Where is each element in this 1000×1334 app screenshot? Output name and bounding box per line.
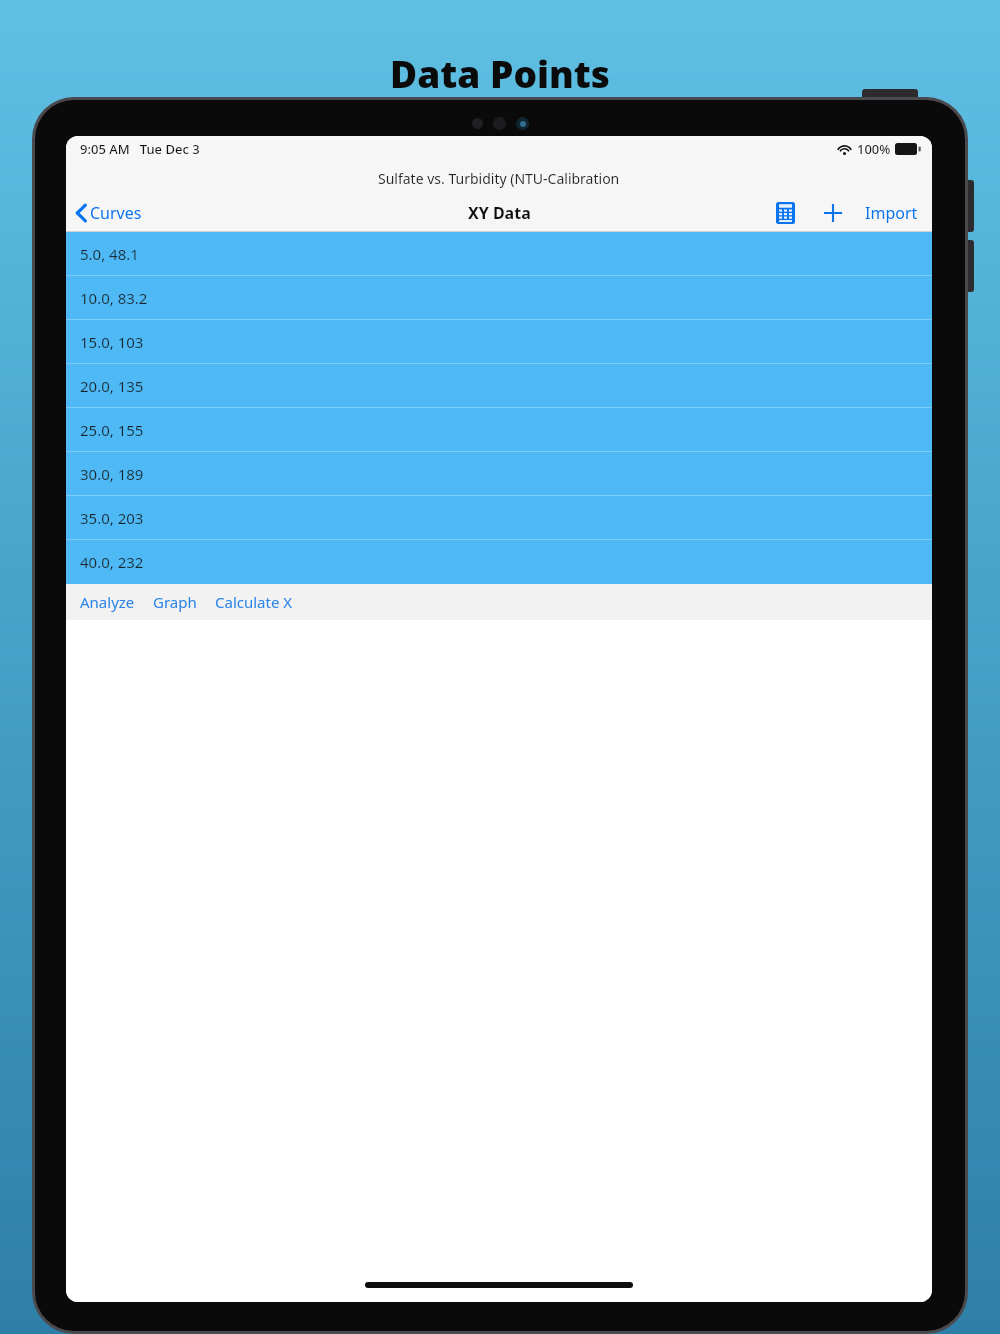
button[interactable]: Calculate X — [209, 586, 299, 618]
staticText: 40.0, 232 — [80, 552, 144, 572]
button[interactable]: Add data point — [817, 197, 849, 229]
button[interactable]: 40.0, 232 — [66, 540, 932, 584]
button[interactable]: Graph — [147, 586, 203, 618]
button[interactable]: Import — [859, 196, 924, 230]
staticText: Analyze — [80, 592, 135, 612]
button[interactable]: 5.0, 48.1 — [66, 232, 932, 276]
button[interactable]: 30.0, 189 — [66, 452, 932, 496]
staticText: Import — [865, 202, 918, 224]
staticText: 10.0, 83.2 — [80, 288, 148, 308]
staticText: 9:05 AM Tue Dec 3 — [80, 140, 200, 158]
button[interactable]: 25.0, 155 — [66, 408, 932, 452]
staticText: Calculate X — [215, 592, 293, 612]
button[interactable]: 10.0, 83.2 — [66, 276, 932, 320]
staticText: 30.0, 189 — [80, 464, 144, 484]
button[interactable]: 15.0, 103 — [66, 320, 932, 364]
staticText: 25.0, 155 — [80, 420, 144, 440]
staticText: Data Points — [0, 48, 1000, 98]
staticText: XY Data — [468, 202, 531, 224]
staticText: Graph — [153, 592, 197, 612]
staticText: 5.0, 48.1 — [80, 244, 139, 264]
button[interactable]: 20.0, 135 — [66, 364, 932, 408]
staticText: 35.0, 203 — [80, 508, 144, 528]
button[interactable]: Analyze — [74, 586, 141, 618]
staticText: 15.0, 103 — [80, 332, 144, 352]
staticText: 100% — [857, 140, 891, 158]
button[interactable]: Calculator — [770, 196, 801, 230]
button[interactable]: 35.0, 203 — [66, 496, 932, 540]
button[interactable]: Curves — [66, 196, 152, 230]
staticText: Curves — [90, 202, 142, 224]
staticText: 20.0, 135 — [80, 376, 144, 396]
staticText: Sulfate vs. Turbidity (NTU-Calibration — [378, 169, 620, 188]
